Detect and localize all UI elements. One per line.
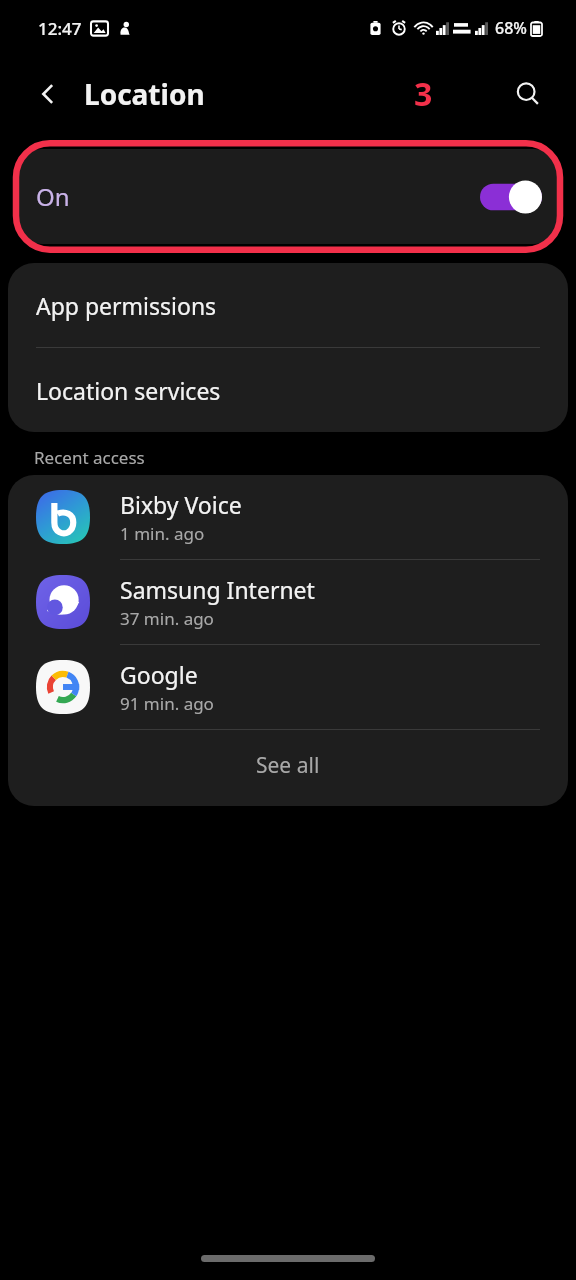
staticText: See all bbox=[256, 751, 320, 780]
staticText: Samsung Internet bbox=[120, 574, 315, 605]
button[interactable]: Samsung Internet bbox=[8, 560, 568, 644]
button[interactable]: Bixby Voice bbox=[8, 475, 568, 559]
staticText: App permissions bbox=[36, 290, 217, 321]
button[interactable]: App permissions bbox=[8, 263, 568, 347]
staticText: 91 min. ago bbox=[120, 692, 214, 715]
staticText: 3 bbox=[414, 72, 433, 116]
button[interactable]: See all bbox=[8, 730, 568, 800]
staticText: 68% bbox=[495, 17, 527, 39]
staticText: Recent access bbox=[34, 446, 145, 469]
staticText: Google bbox=[120, 659, 198, 690]
staticText: 1 min. ago bbox=[120, 522, 205, 545]
button[interactable]: Google bbox=[8, 645, 568, 729]
button[interactable]: Back bbox=[24, 70, 72, 118]
button[interactable]: On bbox=[16, 149, 560, 244]
staticText: 12:47 bbox=[38, 17, 82, 40]
button[interactable]: Location services bbox=[8, 348, 568, 432]
staticText: 37 min. ago bbox=[120, 607, 214, 630]
staticText: Location bbox=[84, 75, 205, 113]
staticText: Bixby Voice bbox=[120, 489, 242, 520]
staticText: Location services bbox=[36, 375, 221, 406]
button[interactable]: Search bbox=[504, 70, 552, 118]
staticText: On bbox=[36, 180, 70, 213]
